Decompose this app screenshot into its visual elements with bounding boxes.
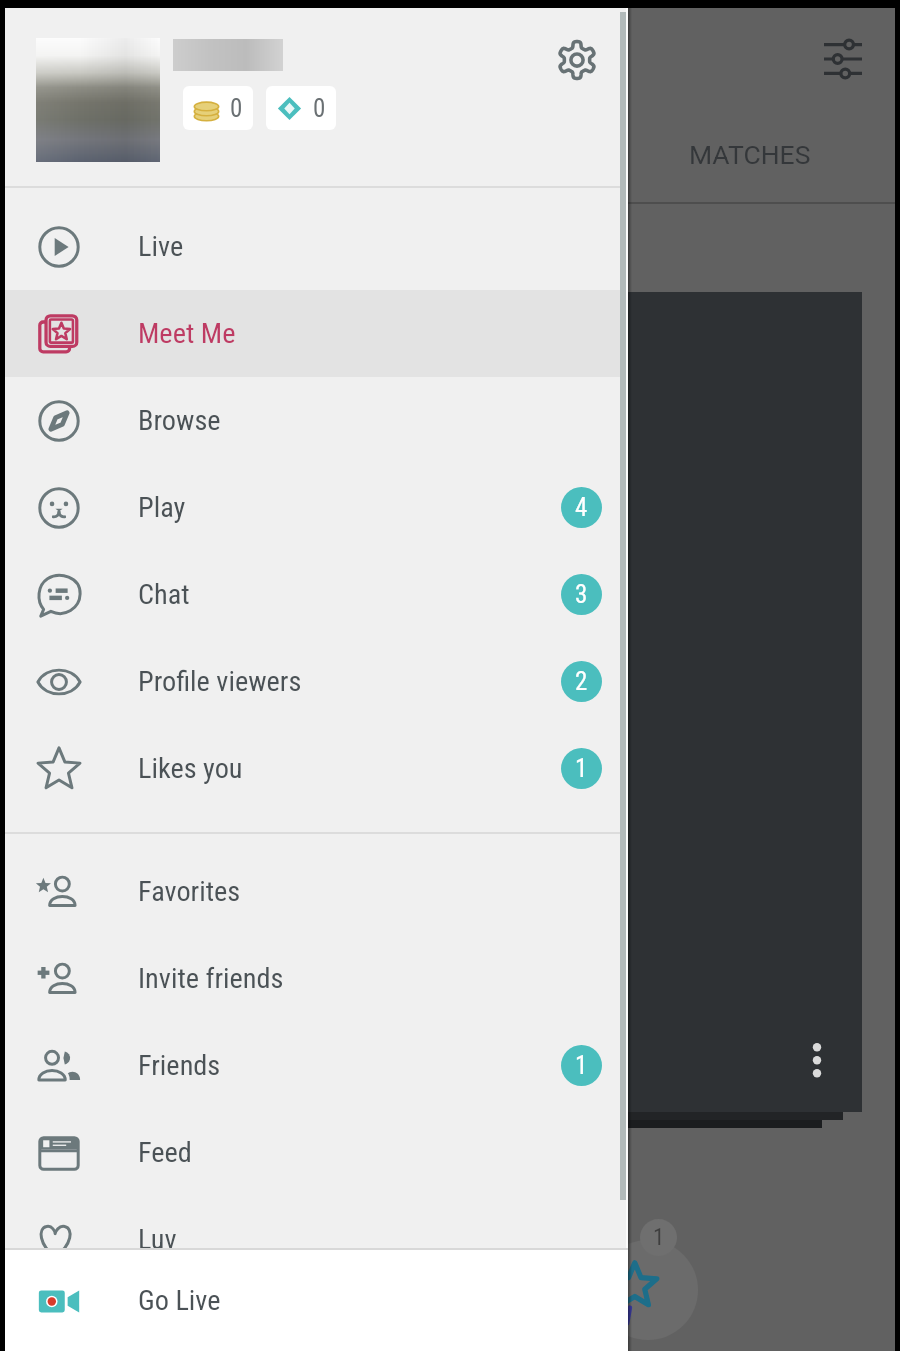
button[interactable]: Profile viewers — [5, 638, 628, 725]
staticText: 4 — [575, 493, 588, 522]
staticText: Chat — [138, 578, 190, 611]
staticText: Meet Me — [138, 317, 236, 350]
staticText: 3 — [575, 580, 588, 609]
button[interactable]: Profile photo — [36, 38, 160, 162]
staticText: Friends — [138, 1049, 221, 1082]
button[interactable]: Feed — [5, 1109, 628, 1196]
staticText: 0 — [230, 94, 243, 123]
staticText: Feed — [138, 1136, 192, 1169]
button[interactable]: Meet Me — [5, 290, 628, 377]
button[interactable]: Play — [5, 464, 628, 551]
button[interactable]: Chat — [5, 551, 628, 638]
button[interactable]: Friends — [5, 1022, 628, 1109]
staticText: Profile viewers — [138, 665, 302, 698]
button[interactable]: Invite friends — [5, 935, 628, 1022]
button[interactable]: Shooting star — [598, 1240, 698, 1340]
staticText: Go Live — [138, 1284, 221, 1317]
button[interactable]: Go Live — [5, 1250, 628, 1351]
button[interactable]: 0 — [266, 86, 336, 130]
staticText: Live — [138, 230, 184, 263]
button[interactable]: Settings — [548, 31, 606, 89]
staticText: 1 — [575, 754, 588, 783]
button[interactable]: Likes you — [5, 725, 628, 812]
staticText: MATCHES — [689, 139, 811, 170]
staticText: Play — [138, 491, 186, 524]
button[interactable]: Live — [5, 203, 628, 290]
button[interactable]: Luv — [5, 1196, 628, 1283]
staticText: Likes you — [138, 752, 243, 785]
staticText: 1 — [575, 1051, 588, 1080]
button[interactable]: 0 — [183, 86, 253, 130]
staticText: Luv — [138, 1223, 177, 1256]
button[interactable]: Filters — [814, 30, 872, 88]
staticText: 2 — [575, 667, 588, 696]
staticText: 1 — [653, 1224, 665, 1251]
staticText: Favorites — [138, 875, 241, 908]
staticText: Browse — [138, 404, 221, 437]
button[interactable]: Favorites — [5, 848, 628, 935]
staticText: Invite friends — [138, 962, 284, 995]
staticText: 0 — [313, 94, 326, 123]
button[interactable]: Browse — [5, 377, 628, 464]
button[interactable]: More options — [793, 1040, 841, 1088]
